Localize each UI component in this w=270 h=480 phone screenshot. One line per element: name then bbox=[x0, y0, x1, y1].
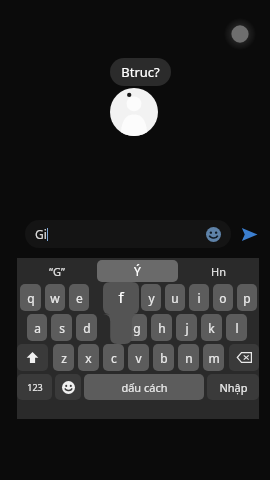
button[interactable]: c bbox=[103, 344, 124, 371]
button[interactable]: dấu cách bbox=[84, 374, 204, 400]
button[interactable]: b bbox=[153, 344, 174, 371]
button[interactable]: x bbox=[78, 344, 99, 371]
staticText: Ý bbox=[134, 263, 141, 279]
staticText: h bbox=[158, 320, 166, 336]
button[interactable]: g bbox=[126, 314, 147, 341]
button[interactable]: m bbox=[203, 344, 224, 371]
button[interactable]: Ý bbox=[97, 260, 178, 282]
staticText: c bbox=[111, 350, 117, 366]
staticText: x bbox=[85, 350, 92, 366]
staticText: Btruc? bbox=[121, 63, 160, 81]
button[interactable]: 123 bbox=[17, 374, 52, 400]
button[interactable]: Emoji bbox=[206, 227, 221, 242]
button[interactable]: “G” bbox=[17, 258, 97, 284]
staticText: “G” bbox=[49, 264, 65, 279]
button[interactable]: j bbox=[176, 314, 197, 341]
staticText: f bbox=[118, 287, 124, 307]
button[interactable]: z bbox=[53, 344, 74, 371]
staticText: a bbox=[34, 320, 41, 336]
staticText: j bbox=[185, 320, 189, 336]
button[interactable]: y bbox=[141, 284, 161, 311]
staticText: dấu cách bbox=[121, 380, 168, 395]
staticText: y bbox=[148, 290, 155, 306]
button[interactable]: Btruc? bbox=[110, 58, 171, 86]
staticText: n bbox=[185, 350, 193, 366]
staticText: g bbox=[133, 320, 141, 336]
button[interactable]: e bbox=[69, 284, 89, 311]
button[interactable]: Gi bbox=[25, 220, 231, 248]
button[interactable]: Send bbox=[238, 223, 260, 245]
button[interactable]: a bbox=[27, 314, 47, 341]
button[interactable]: k bbox=[201, 314, 222, 341]
staticText: 123 bbox=[27, 381, 43, 393]
button[interactable]: Backspace bbox=[229, 344, 259, 371]
staticText: s bbox=[59, 320, 65, 336]
staticText: z bbox=[61, 350, 67, 366]
button[interactable]: s bbox=[51, 314, 72, 341]
button[interactable]: u bbox=[165, 284, 185, 311]
staticText: Hn bbox=[211, 264, 226, 279]
button[interactable]: d bbox=[76, 314, 97, 341]
staticText: Gi bbox=[35, 226, 47, 242]
staticText: d bbox=[83, 320, 91, 336]
staticText: u bbox=[171, 290, 179, 306]
button[interactable]: l bbox=[226, 314, 247, 341]
button[interactable]: Nhập bbox=[207, 374, 259, 400]
staticText: v bbox=[135, 350, 142, 366]
staticText: k bbox=[208, 320, 215, 336]
staticText: q bbox=[27, 290, 35, 306]
staticText: e bbox=[76, 290, 83, 306]
button[interactable]: Emoji keyboard bbox=[55, 374, 81, 400]
button[interactable]: w bbox=[45, 284, 65, 311]
button[interactable]: i bbox=[189, 284, 209, 311]
button[interactable]: h bbox=[151, 314, 172, 341]
button[interactable]: n bbox=[178, 344, 199, 371]
button[interactable]: p bbox=[237, 284, 257, 311]
staticText: l bbox=[235, 320, 239, 336]
staticText: Nhập bbox=[219, 380, 248, 395]
staticText: b bbox=[160, 350, 168, 366]
button[interactable]: o bbox=[213, 284, 233, 311]
other: Status indicator bbox=[224, 18, 256, 50]
staticText: w bbox=[50, 290, 60, 306]
button[interactable]: Hn bbox=[178, 258, 259, 284]
button[interactable]: v bbox=[128, 344, 149, 371]
button[interactable]: Profile picture bbox=[110, 88, 158, 136]
staticText: i bbox=[197, 290, 201, 306]
button[interactable]: q bbox=[20, 284, 41, 311]
button[interactable]: Shift bbox=[17, 344, 48, 371]
staticText: o bbox=[219, 290, 227, 306]
staticText: p bbox=[243, 290, 251, 306]
staticText: m bbox=[208, 350, 220, 366]
